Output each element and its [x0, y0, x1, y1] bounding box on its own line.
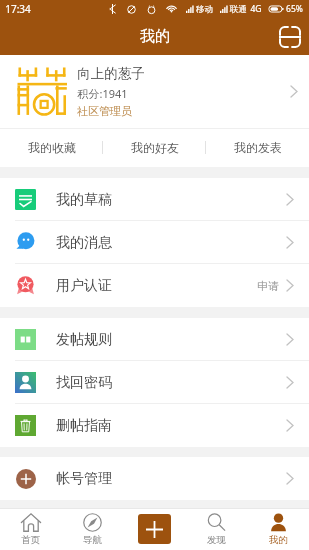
- button[interactable]: 向上的葱子: [0, 55, 309, 128]
- staticText: 我的: [140, 27, 170, 46]
- staticText: 导航: [83, 534, 102, 546]
- button[interactable]: 发帖规则: [0, 318, 309, 361]
- button[interactable]: 首页: [0, 508, 61, 550]
- staticText: 申请: [257, 279, 279, 293]
- staticText: 删帖指南: [56, 417, 112, 435]
- staticText: 移动: [196, 4, 213, 15]
- button[interactable]: 我的草稿: [0, 178, 309, 221]
- button[interactable]: Scan QR code: [279, 26, 301, 48]
- staticText: 我的好友: [131, 140, 179, 155]
- button[interactable]: 找回密码: [0, 361, 309, 404]
- button[interactable]: 发现: [185, 508, 247, 550]
- button[interactable]: 我的发表: [206, 128, 309, 167]
- button[interactable]: 我的好友: [103, 128, 206, 167]
- staticText: 17:34: [5, 2, 31, 16]
- staticText: 联通: [230, 4, 247, 15]
- staticText: 我的收藏: [28, 140, 76, 155]
- staticText: 帐号管理: [56, 470, 112, 488]
- staticText: 找回密码: [56, 374, 112, 392]
- button[interactable]: 导航: [61, 508, 123, 550]
- staticText: 社区管理员: [77, 104, 132, 118]
- button[interactable]: New post: [123, 508, 185, 550]
- staticText: 发帖规则: [56, 331, 112, 349]
- button[interactable]: 删帖指南: [0, 404, 309, 447]
- staticText: 积分:1941: [77, 86, 128, 101]
- staticText: 发现: [207, 534, 226, 546]
- button[interactable]: 我的: [247, 508, 309, 550]
- button[interactable]: 用户认证: [0, 264, 309, 307]
- button[interactable]: 我的收藏: [0, 128, 103, 167]
- staticText: 我的: [269, 534, 288, 546]
- staticText: 4G: [250, 3, 262, 15]
- staticText: 65%: [286, 3, 303, 15]
- button[interactable]: 我的消息: [0, 221, 309, 264]
- staticText: 我的发表: [234, 140, 282, 155]
- staticText: 向上的葱子: [77, 65, 145, 82]
- staticText: 用户认证: [56, 277, 112, 295]
- staticText: 我的消息: [56, 234, 112, 252]
- staticText: 我的草稿: [56, 191, 112, 209]
- button[interactable]: 帐号管理: [0, 457, 309, 500]
- staticText: 首页: [21, 534, 40, 546]
